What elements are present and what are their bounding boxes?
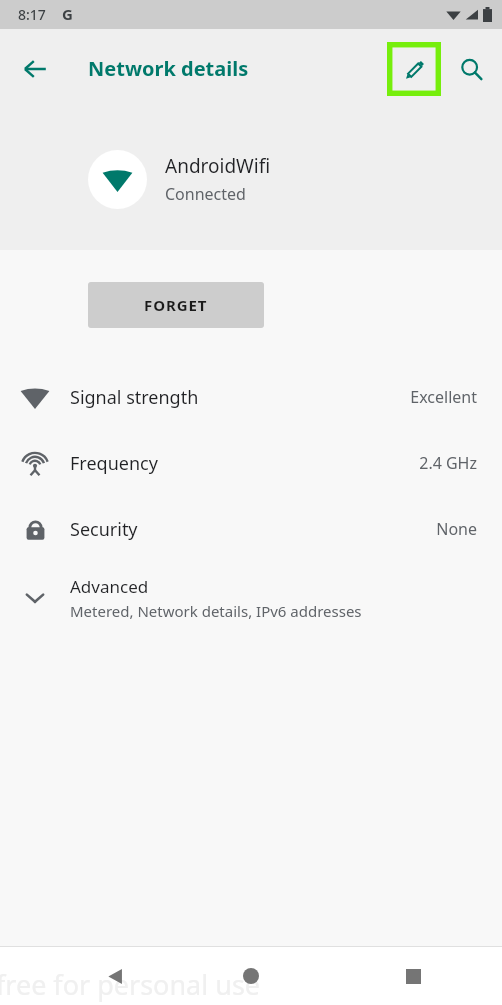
- button[interactable]: Back: [12, 46, 58, 92]
- staticText: Advanced: [70, 575, 149, 598]
- staticText: Security: [70, 517, 436, 542]
- staticText: Excellent: [410, 386, 477, 408]
- staticText: Frequency: [70, 451, 419, 476]
- staticText: Metered, Network details, IPv6 addresses: [70, 601, 362, 621]
- staticText: 2.4 GHz: [419, 452, 477, 474]
- button[interactable]: Security: [0, 496, 502, 562]
- staticText: AndroidWifi: [165, 153, 271, 179]
- staticText: None: [436, 518, 477, 540]
- button[interactable]: Edit: [386, 41, 442, 97]
- staticText: free for personal use: [0, 966, 261, 1003]
- button[interactable]: Advanced: [0, 562, 502, 634]
- button[interactable]: Frequency: [0, 430, 502, 496]
- button[interactable]: FORGET: [88, 282, 264, 328]
- staticText: Connected: [165, 183, 246, 205]
- staticText: 8:17: [18, 5, 46, 24]
- staticText: G: [62, 4, 73, 24]
- button[interactable]: Back: [90, 951, 140, 1001]
- button[interactable]: Home: [226, 951, 276, 1001]
- button[interactable]: Signal strength: [0, 364, 502, 430]
- staticText: Network details: [88, 55, 249, 82]
- staticText: FORGET: [144, 295, 208, 315]
- button[interactable]: Search: [448, 46, 494, 92]
- staticText: Signal strength: [70, 385, 410, 410]
- button[interactable]: Recent apps: [388, 951, 438, 1001]
